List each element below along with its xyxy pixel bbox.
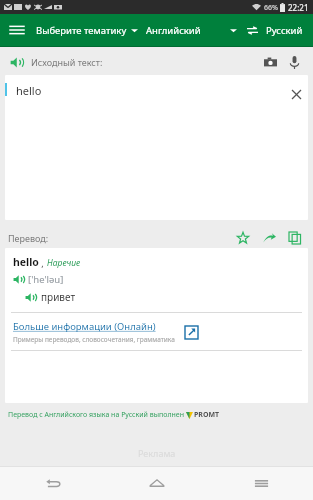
staticText: PROMT [194,410,220,420]
button[interactable]: Выберите тематику [34,20,140,41]
staticText: Английский [146,24,201,37]
staticText: Примеры переводов, словосочетания, грамм… [13,335,175,344]
staticText: ['he'ləu] [28,273,64,286]
staticText: Больше информации (Онлайн) [13,320,156,333]
staticText: hello [13,255,39,269]
staticText: 66% [264,3,278,13]
button[interactable]: Recent apps [209,466,313,500]
button[interactable]: Английский [146,24,237,37]
button[interactable]: Voice input [285,51,303,73]
staticText: hello [16,83,42,98]
button[interactable]: hello [5,248,308,403]
staticText: привет [41,290,76,304]
button[interactable]: Clear text [286,83,306,105]
button[interactable]: Back [0,466,105,500]
staticText: 22:21 [288,2,309,13]
button[interactable]: Русский [266,24,313,37]
button[interactable]: Больше информации (Онлайн) [13,320,308,344]
button[interactable]: Copy [285,228,305,248]
button[interactable]: Add to favorites [233,228,253,248]
staticText: Перевод с Английского языка на Русский в… [8,410,186,420]
staticText: Выберите тематику [36,24,127,37]
button[interactable]: Share [259,228,279,248]
button[interactable]: Menu [0,14,34,46]
button[interactable]: hello [5,75,308,220]
staticText: Русский [266,24,303,37]
staticText: Наречие [47,257,81,269]
button[interactable]: ['he'ləu] [13,273,64,286]
button[interactable]: Swap languages [243,21,261,39]
button[interactable]: Speak source text [6,52,26,72]
staticText: Исходный текст: [31,56,103,68]
staticText: Перевод: [8,232,49,244]
button[interactable]: Home [105,466,209,500]
button[interactable]: Camera input [259,51,281,73]
staticText: , [39,257,47,269]
button[interactable]: привет [25,290,76,304]
staticText: Реклама [138,447,176,459]
